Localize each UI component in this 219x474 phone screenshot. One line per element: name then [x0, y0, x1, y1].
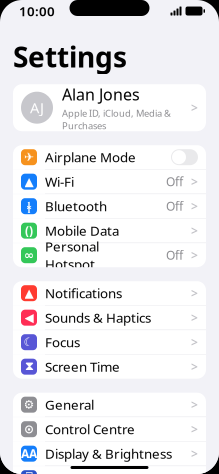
- staticText: ⚙: [23, 398, 34, 411]
- staticText: >: [191, 421, 198, 437]
- staticText: General: [45, 396, 94, 413]
- button[interactable]: ▲: [13, 281, 206, 305]
- button[interactable]: ⌸: [13, 466, 206, 474]
- staticText: Personal Hotspot: [45, 237, 99, 273]
- button[interactable]: ᛡ: [13, 194, 206, 218]
- staticText: >: [191, 397, 198, 413]
- staticText: >: [191, 174, 198, 190]
- staticText: Alan Jones: [62, 84, 140, 105]
- staticText: >: [191, 334, 198, 350]
- button[interactable]: ⧗: [13, 355, 206, 379]
- staticText: ☾: [23, 335, 34, 349]
- staticText: (): [25, 223, 33, 239]
- staticText: AJ: [30, 98, 44, 117]
- staticText: >: [191, 359, 198, 375]
- staticText: Mobile Data: [45, 222, 119, 239]
- button[interactable]: ◀: [13, 306, 206, 330]
- button[interactable]: AA: [13, 442, 206, 466]
- staticText: 10:00: [19, 2, 55, 20]
- staticText: AA: [21, 446, 37, 462]
- staticText: ⧗: [25, 361, 33, 372]
- button[interactable]: (): [13, 219, 206, 243]
- staticText: >: [191, 223, 198, 239]
- staticText: >: [191, 198, 198, 214]
- staticText: Display & Brightness: [45, 445, 172, 462]
- staticText: >: [191, 247, 198, 263]
- staticText: ⌸: [25, 471, 32, 474]
- staticText: >: [191, 100, 198, 116]
- button[interactable]: AJ: [13, 84, 206, 131]
- staticText: Wi-Fi: [45, 173, 74, 190]
- staticText: Screen Time: [45, 358, 120, 375]
- staticText: Sounds & Haptics: [45, 309, 151, 326]
- staticText: Bluetooth: [45, 197, 107, 215]
- button[interactable]: ✈: [13, 145, 206, 169]
- staticText: ⊙: [24, 422, 34, 436]
- staticText: Off: [166, 247, 183, 263]
- staticText: ◀: [24, 311, 33, 324]
- staticText: Notifications: [45, 284, 122, 302]
- staticText: ▲: [24, 286, 33, 300]
- button[interactable]: ⚙: [13, 393, 206, 417]
- staticText: ✈: [24, 150, 34, 164]
- button[interactable]: ▲: [13, 170, 206, 194]
- staticText: >: [191, 285, 198, 301]
- staticText: >: [191, 310, 198, 326]
- staticText: Settings: [13, 38, 127, 75]
- staticText: Apple ID, iCloud, Media & Purchases: [62, 107, 171, 132]
- staticText: Airplane Mode: [45, 148, 136, 166]
- button[interactable]: ∞: [13, 243, 206, 267]
- staticText: ▲: [24, 175, 33, 188]
- staticText: Off: [166, 174, 183, 190]
- button[interactable]: ⊙: [13, 417, 206, 441]
- button[interactable]: ☾: [13, 330, 206, 354]
- staticText: ᛡ: [26, 199, 31, 214]
- staticText: Off: [166, 198, 183, 214]
- staticText: ∞: [24, 248, 34, 262]
- staticText: >: [191, 446, 198, 462]
- staticText: Control Centre: [45, 420, 135, 438]
- staticText: Focus: [45, 333, 80, 351]
